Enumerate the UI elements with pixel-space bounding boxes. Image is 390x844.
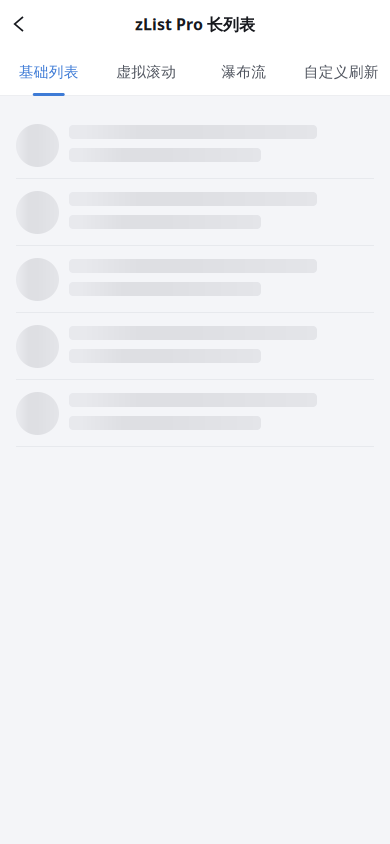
staticText: 虚拟滚动 (116, 63, 176, 81)
staticText: 瀑布流 (221, 63, 266, 81)
button[interactable]: 虚拟滚动 (97, 48, 195, 96)
button[interactable]: 瀑布流 (195, 48, 292, 96)
button[interactable]: Back (0, 0, 38, 48)
staticText: 自定义刷新 (304, 63, 379, 81)
staticText: 基础列表 (19, 63, 79, 81)
staticText: zList Pro 长列表 (135, 13, 255, 35)
button[interactable]: 自定义刷新 (292, 48, 390, 96)
button[interactable]: 基础列表 (0, 48, 97, 96)
